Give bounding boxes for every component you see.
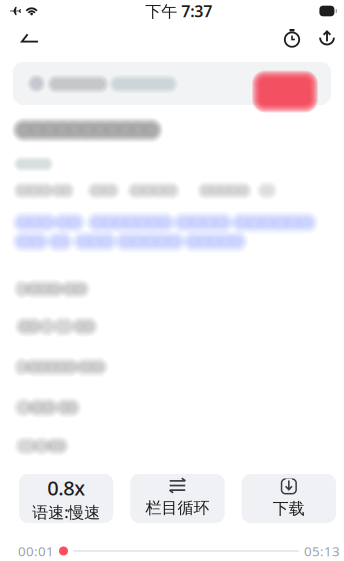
staticText: 00:01 (18, 542, 54, 560)
button[interactable]: Timer (276, 23, 308, 53)
staticText: 下午 7:37 (145, 0, 212, 22)
button[interactable] (13, 62, 331, 105)
staticText: 05:13 (304, 542, 340, 560)
button[interactable]: Share (311, 23, 343, 53)
staticText: 下载 (273, 499, 305, 518)
staticText: 语速:慢速 (32, 501, 100, 523)
staticText: 0.8x (47, 474, 85, 501)
staticText: 栏目循环 (145, 498, 209, 518)
button[interactable]: 下载 (242, 474, 336, 523)
button[interactable]: Back (9, 23, 51, 53)
button[interactable]: 0.8x (19, 474, 113, 523)
button[interactable]: 栏目循环 (130, 474, 225, 523)
